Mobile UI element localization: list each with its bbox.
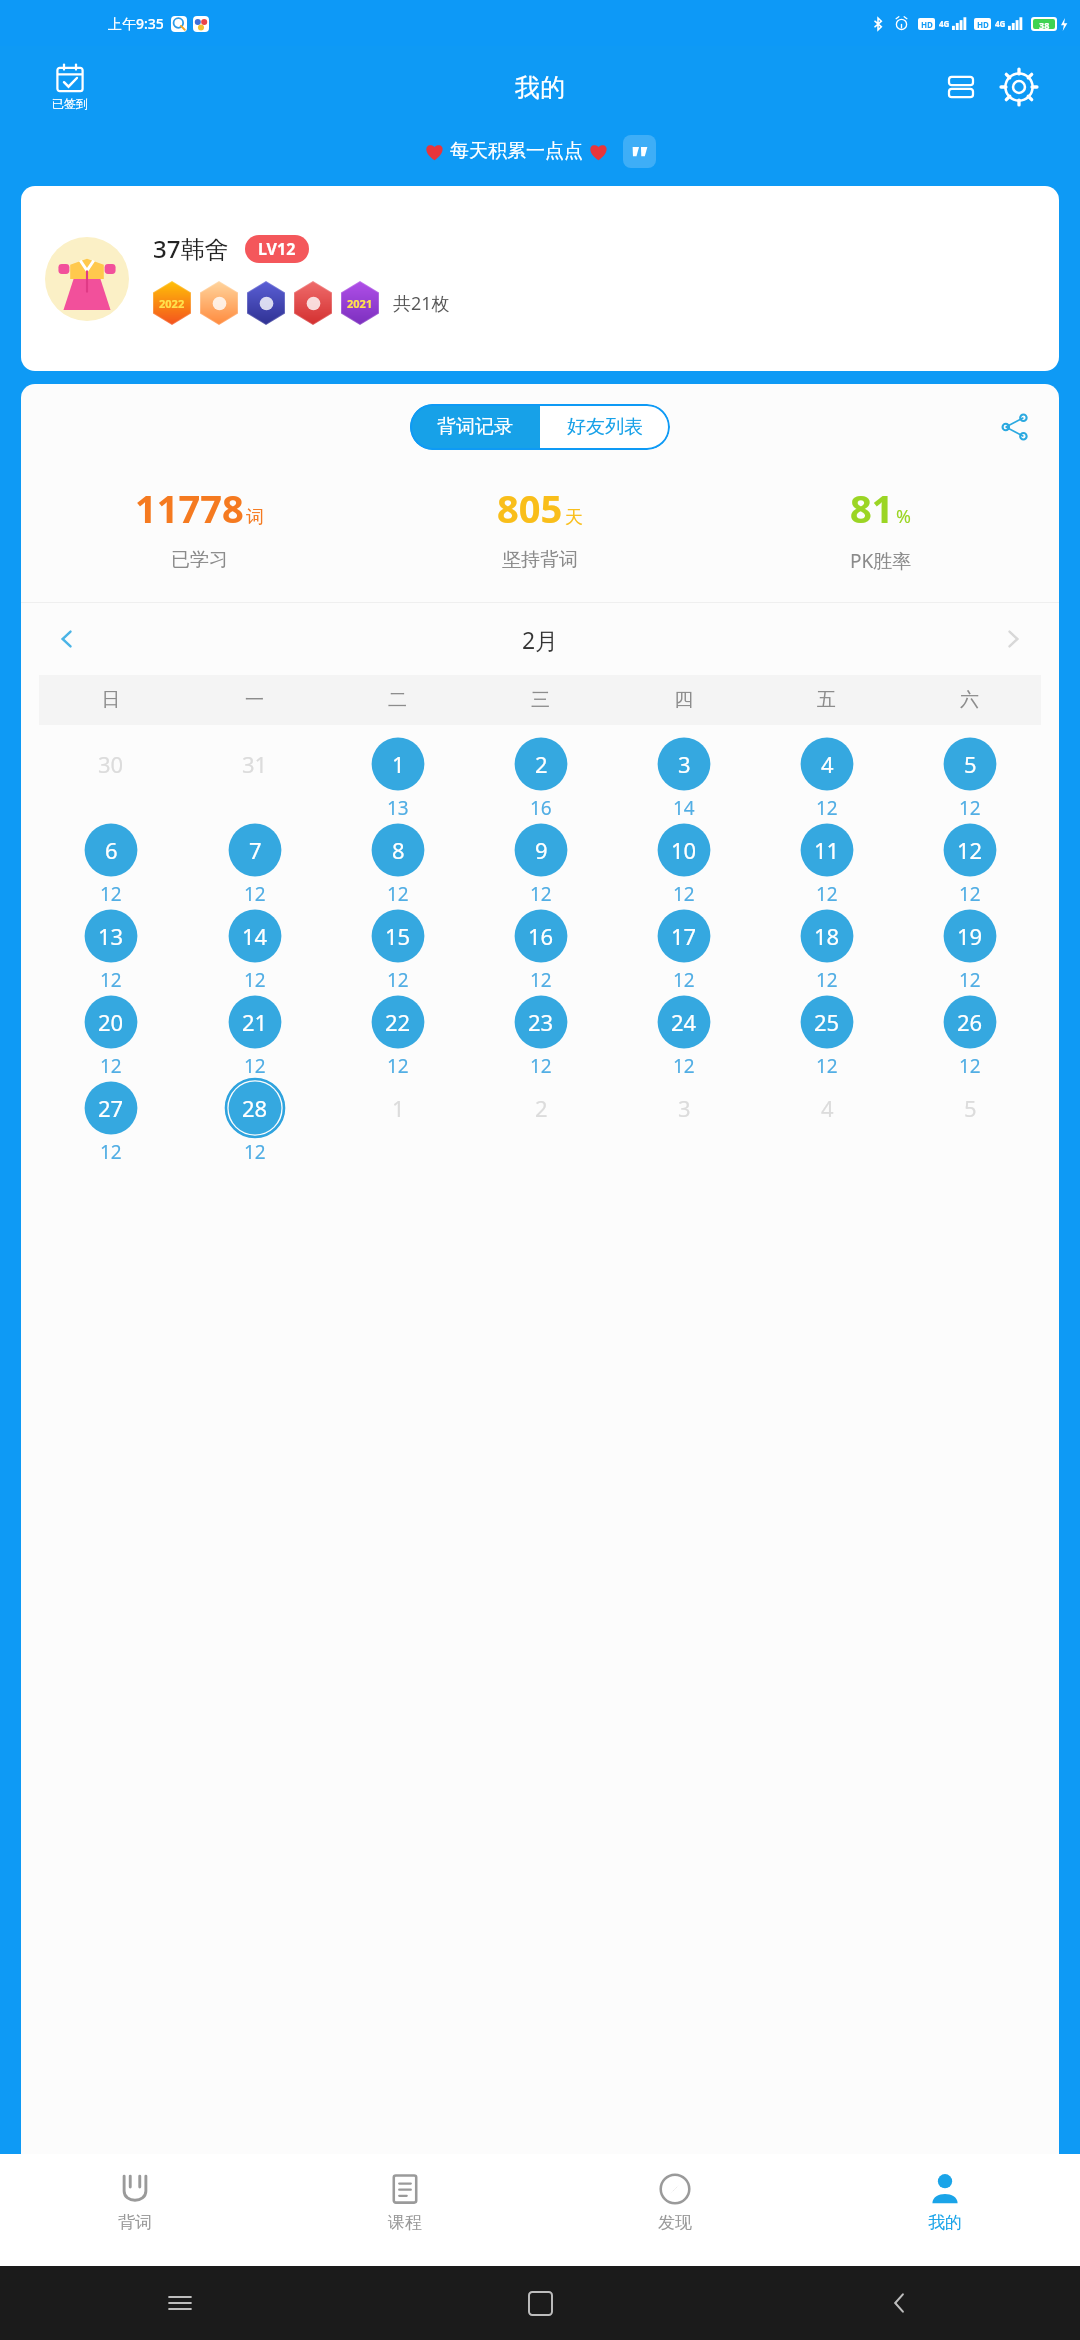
button[interactable]: 已签到	[48, 61, 92, 113]
staticText: 12	[244, 881, 266, 907]
button[interactable]: 8	[326, 821, 469, 907]
staticText: 4	[821, 1093, 834, 1123]
staticText: 7	[249, 835, 262, 865]
staticText: 12	[959, 795, 981, 821]
staticText: 25	[814, 1007, 840, 1037]
button[interactable]: 课程	[270, 2154, 540, 2266]
button[interactable]: 11778	[29, 480, 369, 574]
button[interactable]: 3	[612, 735, 755, 821]
staticText: 13	[98, 921, 124, 951]
staticText: 805	[497, 482, 563, 534]
staticText: 38	[1039, 19, 1050, 29]
button[interactable]: 9	[469, 821, 612, 907]
button[interactable]: 13	[39, 907, 183, 993]
button[interactable]: 5	[898, 735, 1041, 821]
button[interactable]: 背词记录	[410, 404, 540, 450]
button[interactable]: 2	[469, 735, 612, 821]
staticText: 五	[755, 688, 898, 712]
button[interactable]: 12	[898, 821, 1041, 907]
button[interactable]: 81	[710, 480, 1051, 576]
button[interactable]: Back	[720, 2266, 1080, 2340]
staticText: 18	[814, 921, 840, 951]
staticText: 8	[392, 835, 405, 865]
staticText: LV12	[258, 238, 296, 260]
staticText: 12	[100, 881, 122, 907]
staticText: 1	[392, 1093, 405, 1123]
staticText: 37韩舍	[153, 232, 229, 265]
button[interactable]: 18	[755, 907, 898, 993]
staticText: 16	[528, 921, 554, 951]
button[interactable]: 背词	[0, 2154, 270, 2266]
staticText: 22	[385, 1007, 411, 1037]
button[interactable]: 23	[469, 993, 612, 1079]
button[interactable]: 805	[369, 480, 710, 574]
button[interactable]: 6	[39, 821, 183, 907]
staticText: 13	[387, 795, 409, 821]
staticText: 12	[959, 881, 981, 907]
staticText: 2	[535, 1093, 548, 1123]
staticText: HD	[921, 19, 933, 30]
button[interactable]: Scan	[938, 64, 984, 110]
button[interactable]: 16	[469, 907, 612, 993]
button[interactable]: 37韩舍	[21, 186, 1059, 371]
button[interactable]: Home	[360, 2266, 720, 2340]
button[interactable]: 19	[898, 907, 1041, 993]
staticText: 天	[565, 506, 583, 529]
staticText: 好友列表	[567, 415, 643, 439]
button[interactable]: 27	[39, 1079, 183, 1165]
button[interactable]: Settings	[996, 64, 1042, 110]
staticText: 12	[816, 967, 838, 993]
staticText: 4G	[939, 18, 950, 29]
staticText: 六	[898, 688, 1041, 712]
button[interactable]: Recents	[0, 2266, 360, 2340]
button[interactable]: 15	[326, 907, 469, 993]
staticText: 上午9:35	[108, 14, 164, 33]
staticText: 81	[850, 482, 894, 534]
staticText: 16	[530, 795, 552, 821]
button[interactable]: 好友列表	[540, 404, 670, 450]
staticText: 4G	[995, 18, 1006, 29]
button[interactable]: Quote	[623, 135, 656, 168]
staticText: 12	[816, 1053, 838, 1079]
staticText: PK胜率	[850, 548, 912, 574]
button[interactable]: 发现	[540, 2154, 810, 2266]
button[interactable]: Share	[993, 405, 1037, 449]
button[interactable]: Next month	[991, 617, 1035, 661]
button[interactable]: 21	[183, 993, 326, 1079]
button[interactable]: 10	[612, 821, 755, 907]
button[interactable]: 22	[326, 993, 469, 1079]
staticText: 2	[535, 749, 548, 779]
staticText: 12	[673, 1053, 695, 1079]
button[interactable]: 26	[898, 993, 1041, 1079]
button[interactable]: 我的	[810, 2154, 1080, 2266]
staticText: 2021	[347, 296, 373, 311]
staticText: %	[896, 504, 911, 529]
staticText: 我的	[928, 2212, 962, 2233]
button[interactable]: 4	[755, 735, 898, 821]
staticText: 坚持背词	[502, 548, 578, 572]
button[interactable]: 1	[326, 735, 469, 821]
staticText: 17	[671, 921, 697, 951]
button[interactable]: 14	[183, 907, 326, 993]
button[interactable]: 24	[612, 993, 755, 1079]
button[interactable]: 17	[612, 907, 755, 993]
staticText: 一	[183, 688, 326, 712]
staticText: 已签到	[52, 96, 88, 111]
button[interactable]: Previous month	[45, 617, 89, 661]
button[interactable]: 25	[755, 993, 898, 1079]
staticText: 10	[671, 835, 697, 865]
button[interactable]: 20	[39, 993, 183, 1079]
staticText: 27	[98, 1093, 124, 1123]
button[interactable]: 11	[755, 821, 898, 907]
staticText: 12	[530, 1053, 552, 1079]
button[interactable]: 30	[39, 735, 183, 821]
staticText: 5	[964, 1093, 977, 1123]
button[interactable]: 28	[183, 1079, 326, 1165]
button[interactable]: 7	[183, 821, 326, 907]
